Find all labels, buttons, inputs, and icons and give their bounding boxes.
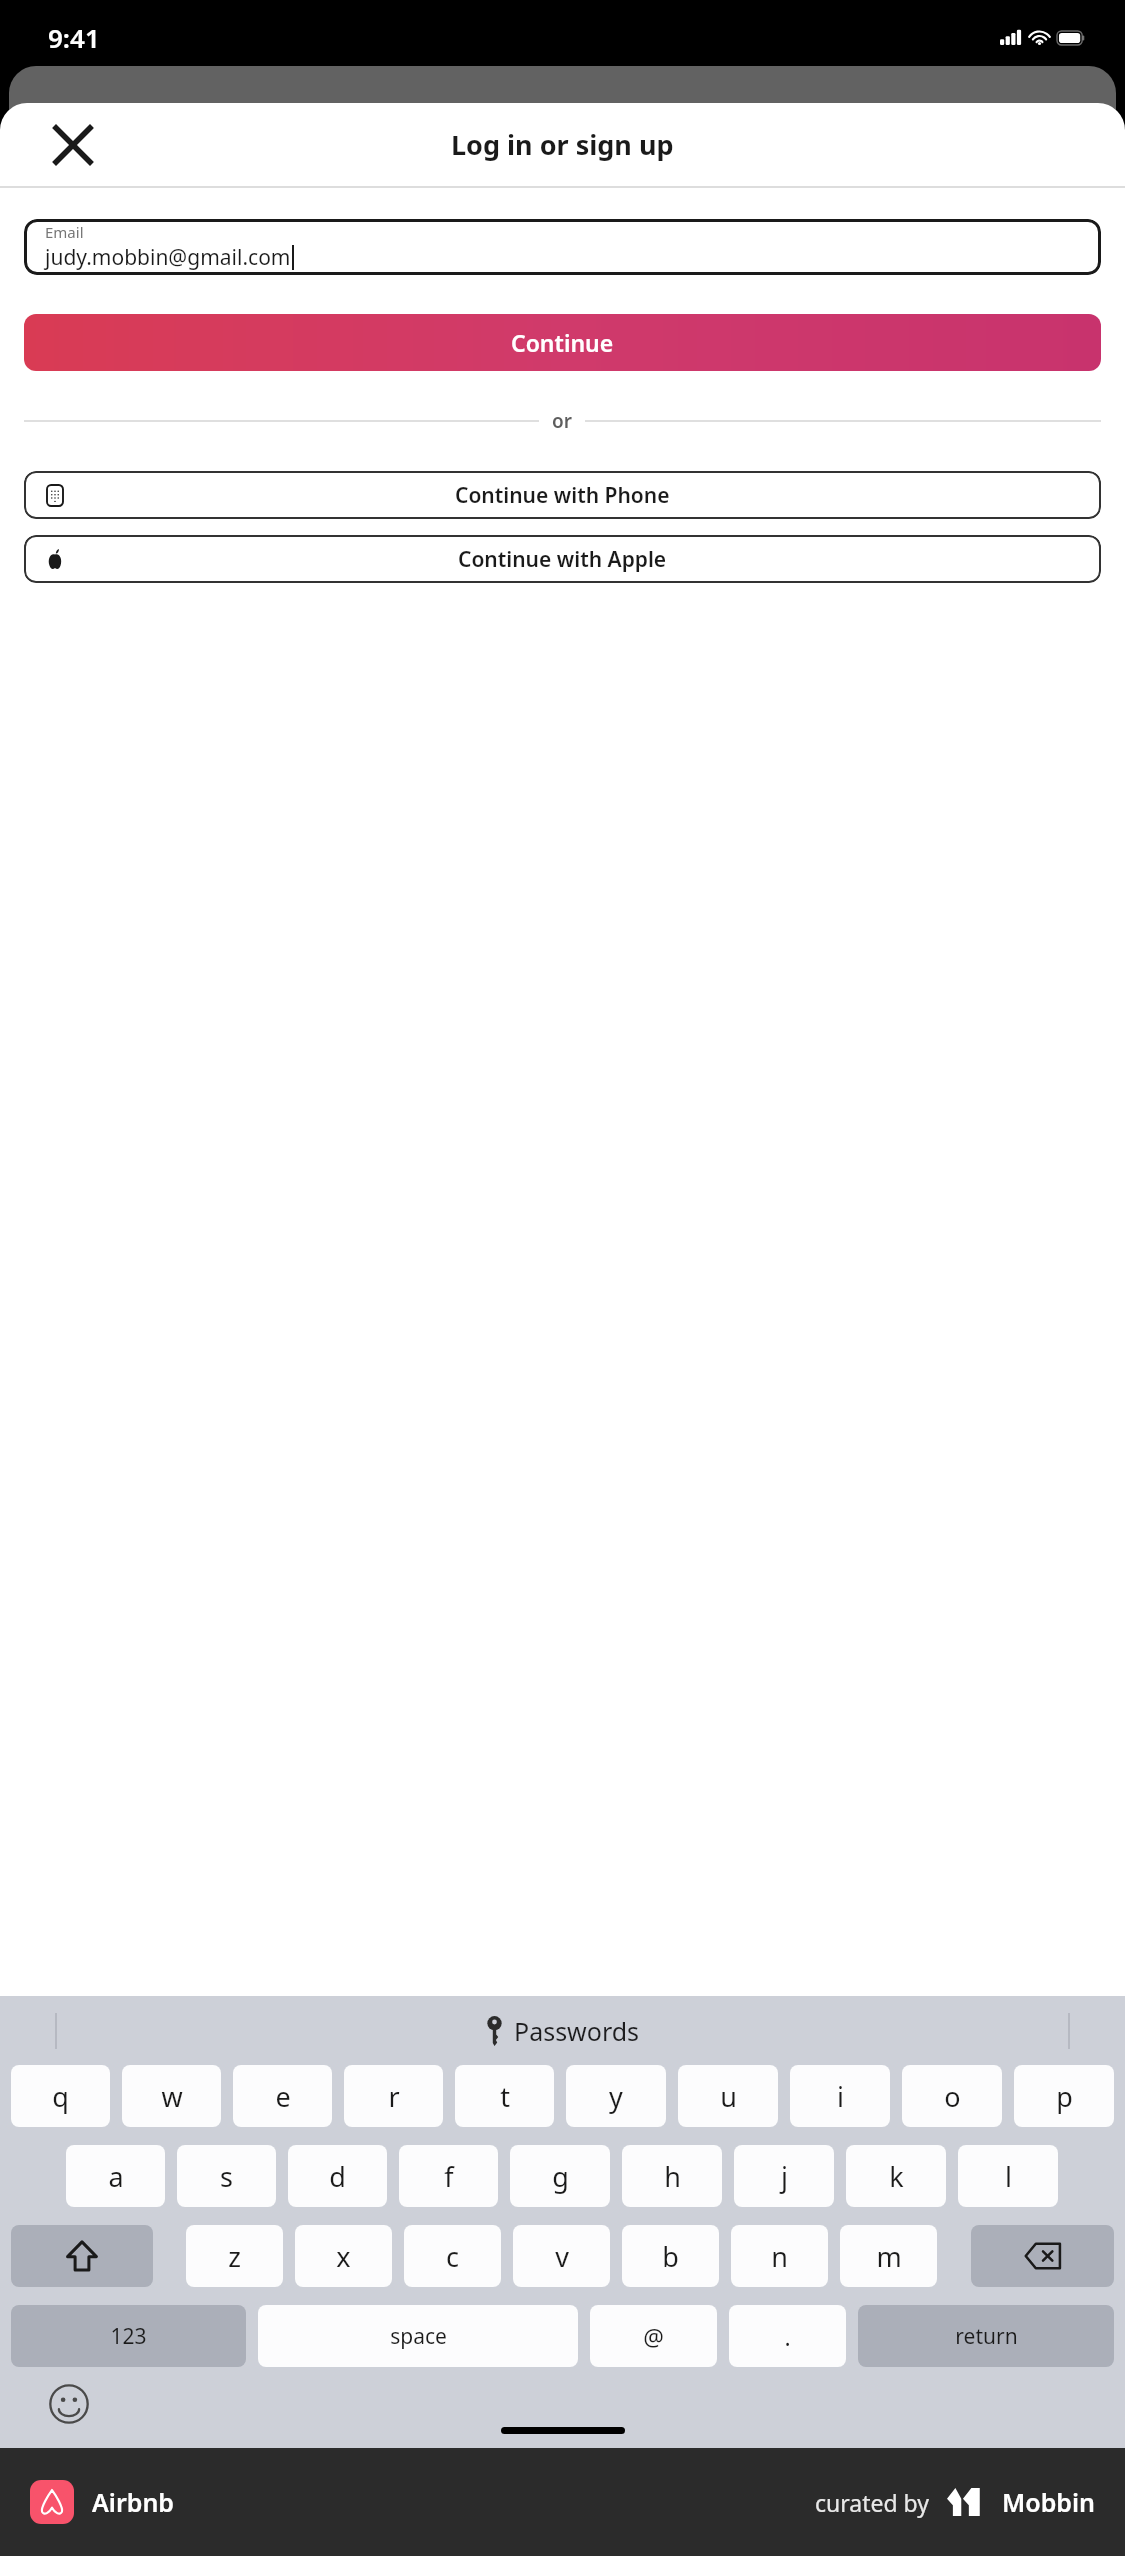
button[interactable]: . xyxy=(729,2305,846,2367)
staticText: e xyxy=(275,2078,291,2115)
staticText: f xyxy=(444,2158,454,2195)
button[interactable]: d xyxy=(288,2145,387,2207)
staticText: x xyxy=(336,2238,351,2275)
button[interactable]: Emoji xyxy=(48,2383,90,2425)
staticText: @ xyxy=(643,2321,664,2352)
staticText: w xyxy=(161,2078,183,2115)
staticText: d xyxy=(329,2158,346,2195)
button[interactable]: t xyxy=(455,2065,554,2127)
staticText: k xyxy=(889,2158,904,2195)
button[interactable]: space xyxy=(258,2305,578,2367)
staticText: b xyxy=(662,2238,679,2275)
button[interactable]: f xyxy=(399,2145,498,2207)
button[interactable]: y xyxy=(566,2065,666,2127)
staticText: g xyxy=(552,2158,569,2195)
staticText: v xyxy=(555,2238,569,2275)
button[interactable]: Backspace xyxy=(971,2225,1114,2287)
button[interactable]: a xyxy=(66,2145,165,2207)
button[interactable]: Passwords xyxy=(486,2014,640,2048)
button[interactable]: Shift xyxy=(11,2225,153,2287)
button[interactable]: r xyxy=(344,2065,443,2127)
button[interactable]: Email xyxy=(24,219,1101,275)
staticText: j xyxy=(781,2158,788,2195)
staticText: 123 xyxy=(110,2322,147,2351)
staticText: o xyxy=(944,2078,961,2115)
button[interactable]: e xyxy=(233,2065,332,2127)
button[interactable]: c xyxy=(404,2225,501,2287)
button[interactable]: @ xyxy=(590,2305,717,2367)
staticText: a xyxy=(108,2158,124,2195)
staticText: u xyxy=(720,2078,737,2115)
staticText: Continue with Apple xyxy=(458,545,667,574)
button[interactable]: j xyxy=(734,2145,834,2207)
staticText: r xyxy=(388,2078,400,2115)
staticText: judy.mobbin@gmail.com xyxy=(45,243,291,272)
button[interactable]: w xyxy=(122,2065,221,2127)
staticText: h xyxy=(664,2158,681,2195)
staticText: Continue xyxy=(511,327,614,358)
button[interactable]: return xyxy=(858,2305,1114,2367)
staticText: p xyxy=(1056,2078,1073,2115)
staticText: q xyxy=(52,2078,69,2115)
button[interactable]: p xyxy=(1014,2065,1114,2127)
button[interactable]: b xyxy=(622,2225,719,2287)
button[interactable]: l xyxy=(958,2145,1058,2207)
button[interactable]: v xyxy=(513,2225,610,2287)
button[interactable]: Continue xyxy=(24,314,1101,371)
staticText: Continue with Phone xyxy=(455,481,670,510)
button[interactable]: n xyxy=(731,2225,828,2287)
staticText: Airbnb xyxy=(92,2485,174,2519)
staticText: space xyxy=(390,2322,447,2351)
staticText: z xyxy=(228,2238,241,2275)
staticText: or xyxy=(552,408,572,434)
staticText: Passwords xyxy=(514,2014,640,2048)
button[interactable]: z xyxy=(186,2225,283,2287)
button[interactable]: x xyxy=(295,2225,392,2287)
button[interactable]: o xyxy=(902,2065,1002,2127)
button[interactable]: q xyxy=(11,2065,110,2127)
staticText: Mobbin xyxy=(1002,2485,1095,2519)
button[interactable]: s xyxy=(177,2145,276,2207)
button[interactable]: h xyxy=(622,2145,722,2207)
staticText: y xyxy=(609,2078,623,2115)
button[interactable]: m xyxy=(840,2225,937,2287)
staticText: i xyxy=(837,2078,844,2115)
button[interactable]: Continue with Phone xyxy=(24,471,1101,519)
button[interactable]: g xyxy=(510,2145,610,2207)
staticText: s xyxy=(220,2158,233,2195)
staticText: t xyxy=(500,2078,510,2115)
staticText: 9:41 xyxy=(48,20,100,55)
button[interactable]: k xyxy=(846,2145,946,2207)
staticText: Log in or sign up xyxy=(451,126,674,163)
button[interactable]: Close xyxy=(52,124,94,166)
button[interactable]: i xyxy=(790,2065,890,2127)
button[interactable]: 123 xyxy=(11,2305,246,2367)
staticText: m xyxy=(876,2238,902,2275)
button[interactable]: u xyxy=(678,2065,778,2127)
staticText: n xyxy=(771,2238,788,2275)
staticText: curated by xyxy=(815,2487,930,2518)
button[interactable]: Continue with Apple xyxy=(24,535,1101,583)
staticText: Email xyxy=(45,222,84,242)
staticText: l xyxy=(1005,2158,1012,2195)
staticText: c xyxy=(446,2238,459,2275)
staticText: return xyxy=(955,2322,1018,2351)
staticText: . xyxy=(784,2321,791,2352)
